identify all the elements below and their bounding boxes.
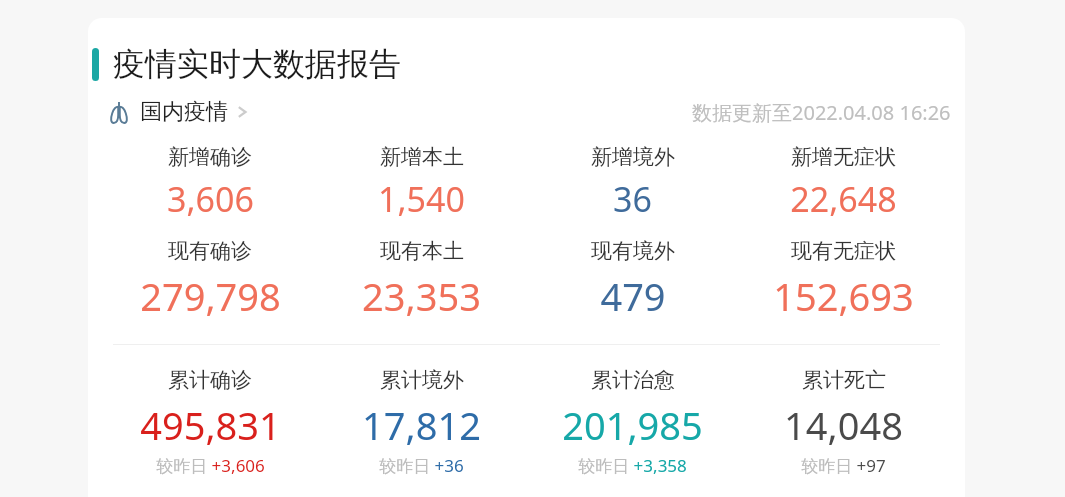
staticText: 201,985 (562, 399, 703, 451)
staticText: 较昨日 +3,358 (578, 454, 687, 477)
button[interactable]: 累计死亡 (738, 367, 949, 477)
staticText: 新增本土 (380, 144, 464, 170)
staticText: 1,540 (378, 176, 465, 222)
staticText: 累计境外 (380, 367, 464, 393)
staticText: 疫情实时大数据报告 (113, 44, 401, 84)
staticText: 新增境外 (591, 144, 675, 170)
staticText: 国内疫情 (140, 98, 228, 126)
staticText: 279,798 (140, 270, 281, 322)
button[interactable]: 新增本土 (316, 144, 527, 222)
button[interactable]: 现有本土 (316, 238, 527, 322)
button[interactable]: 累计治愈 (527, 367, 738, 477)
staticText: 累计死亡 (802, 367, 886, 393)
button[interactable]: 现有境外 (527, 238, 738, 322)
staticText: 22,648 (790, 176, 897, 222)
staticText: 数据更新至2022.04.08 16:26 (692, 99, 951, 126)
staticText: 现有确诊 (168, 238, 252, 264)
button[interactable]: 新增确诊 (104, 144, 316, 222)
staticText: 23,353 (362, 270, 481, 322)
button[interactable]: 现有确诊 (104, 238, 316, 322)
staticText: 现有境外 (591, 238, 675, 264)
staticText: 现有本土 (380, 238, 464, 264)
button[interactable]: 累计境外 (316, 367, 527, 477)
button[interactable]: 新增境外 (527, 144, 738, 222)
staticText: 新增无症状 (791, 144, 896, 170)
staticText: 17,812 (362, 399, 481, 451)
button[interactable]: 累计确诊 (104, 367, 316, 477)
staticText: 495,831 (140, 399, 281, 451)
staticText: 较昨日 +36 (379, 454, 464, 477)
staticText: 累计确诊 (168, 367, 252, 393)
staticText: 累计治愈 (591, 367, 675, 393)
button[interactable]: 国内疫情 (106, 98, 250, 126)
staticText: 152,693 (773, 270, 914, 322)
staticText: 新增确诊 (168, 144, 252, 170)
staticText: 较昨日 +3,606 (156, 454, 265, 477)
staticText: 3,606 (167, 176, 254, 222)
staticText: 36 (613, 176, 652, 222)
staticText: 14,048 (784, 399, 903, 451)
button[interactable]: 新增无症状 (738, 144, 949, 222)
staticText: 479 (600, 270, 666, 322)
button[interactable]: 现有无症状 (738, 238, 949, 322)
staticText: 现有无症状 (791, 238, 896, 264)
staticText: 较昨日 +97 (801, 454, 886, 477)
